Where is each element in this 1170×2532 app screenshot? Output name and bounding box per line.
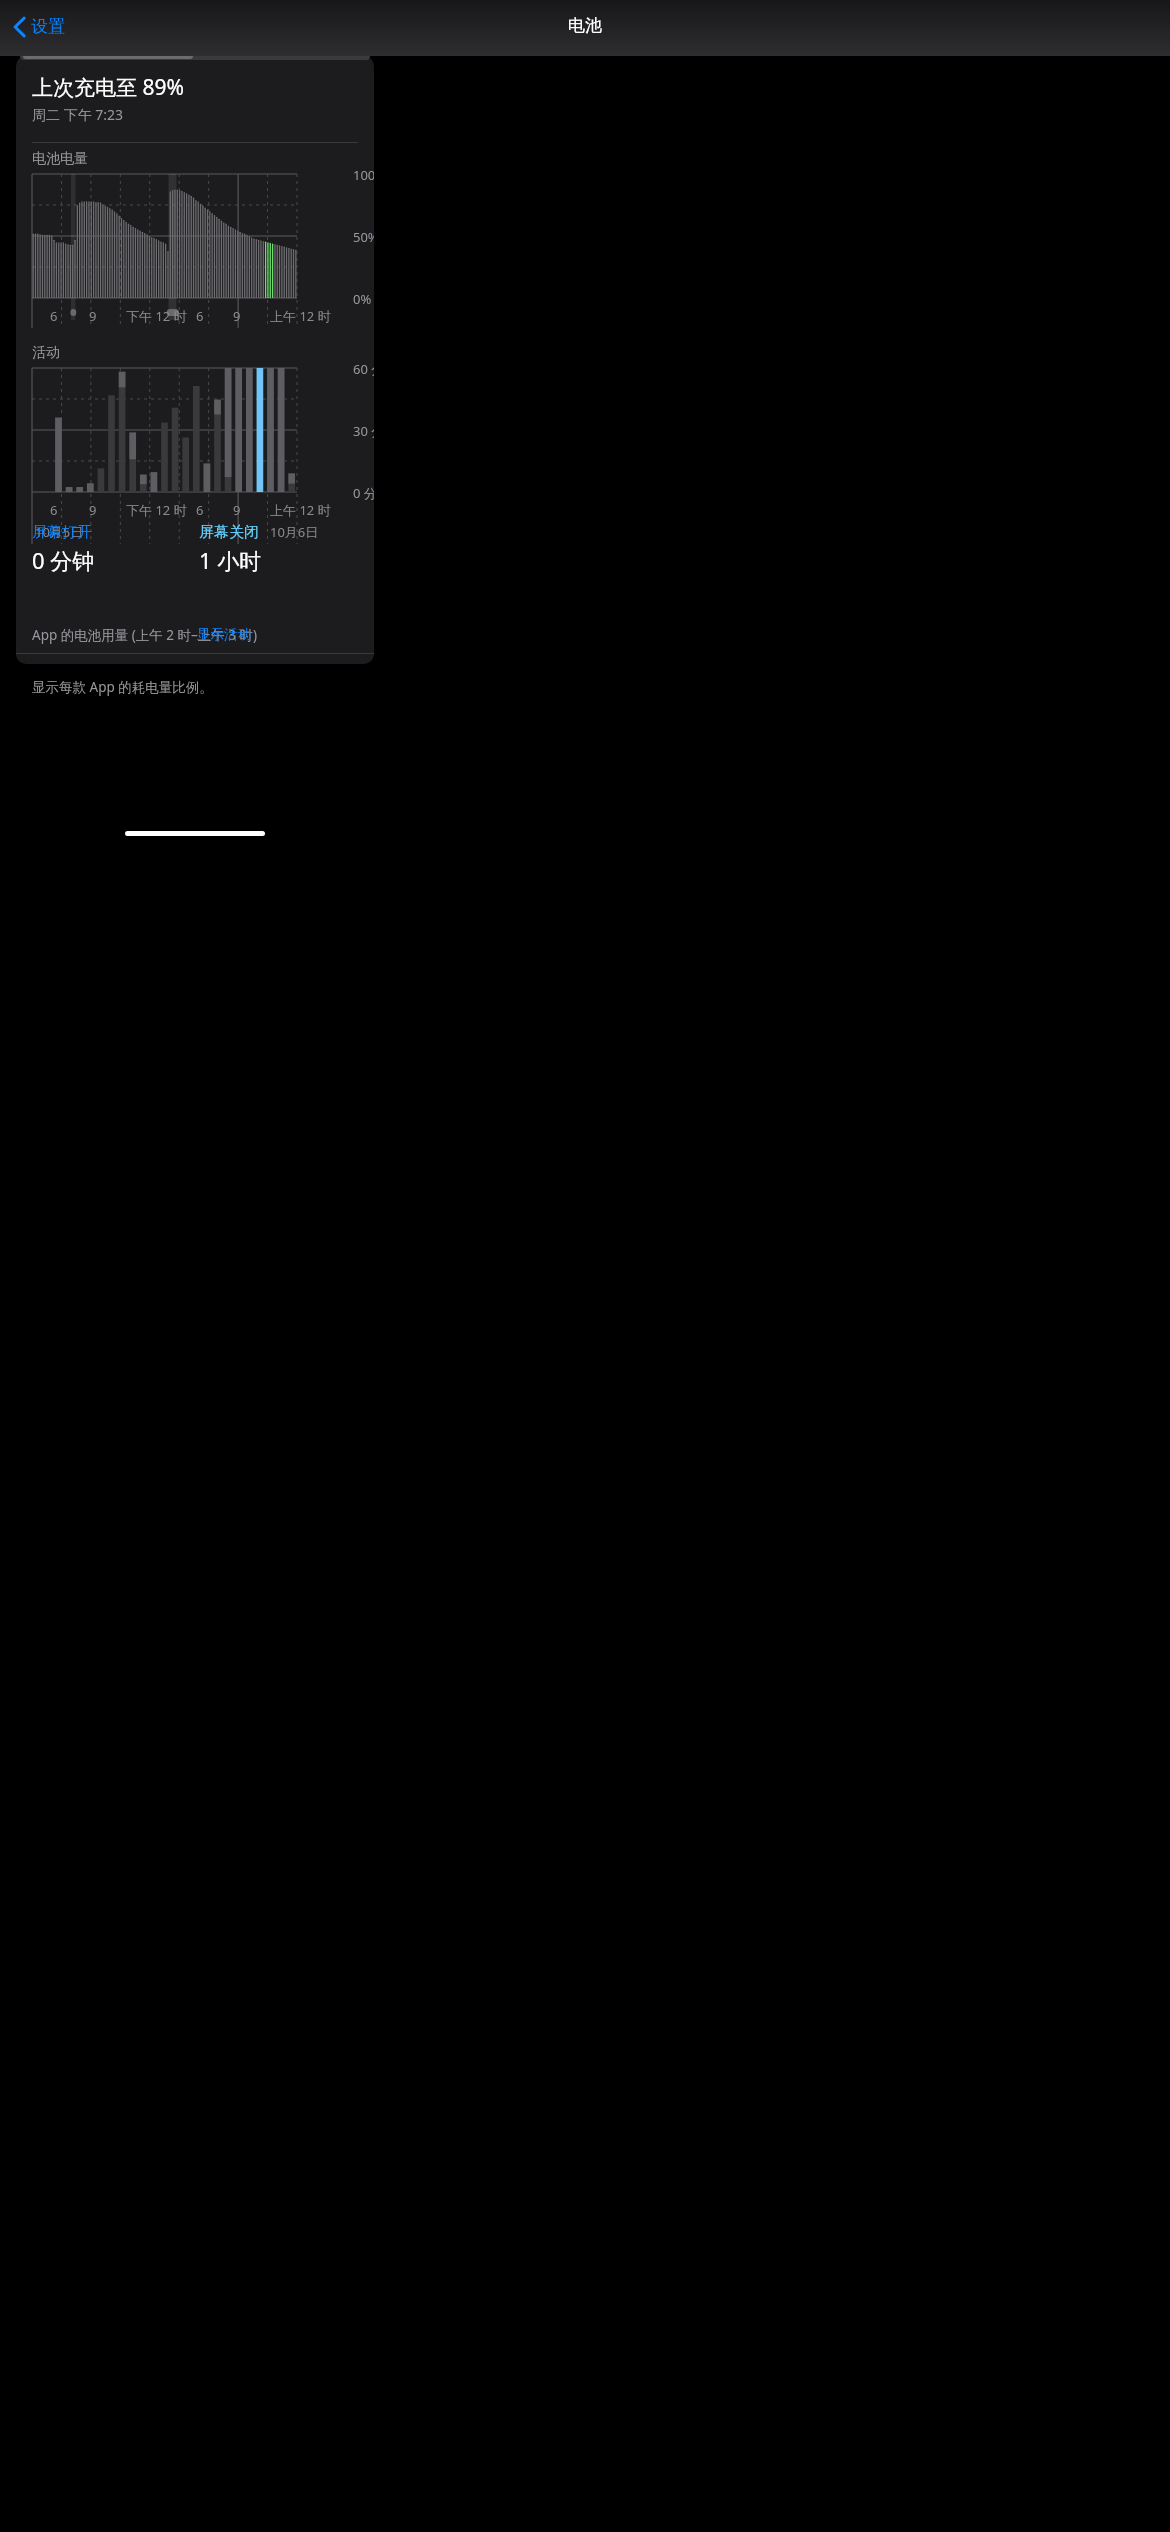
button[interactable]: 显示活动: [191, 622, 257, 647]
staticText: 9: [89, 307, 97, 325]
button[interactable]: 快手: [16, 654, 374, 664]
staticText: 屏幕关闭: [199, 523, 259, 542]
staticText: 30 分钟: [353, 422, 374, 440]
staticText: 50%: [353, 228, 374, 246]
staticText: 活动: [32, 344, 60, 362]
staticText: 电池: [568, 15, 602, 36]
staticText: 6: [196, 501, 204, 519]
staticText: 显示每款 App 的耗电量比例。: [32, 678, 213, 696]
staticText: 10月5日: [35, 523, 84, 541]
staticText: 0 分钟: [353, 484, 374, 502]
staticText: 设置: [31, 16, 65, 37]
staticText: 1 小时: [199, 545, 262, 575]
staticText: 屏幕打开: [32, 523, 92, 542]
staticText: 显示活动: [197, 626, 251, 643]
staticText: 10月6日: [270, 523, 319, 541]
staticText: 100%: [353, 166, 374, 184]
staticText: 0 分钟: [32, 545, 95, 575]
staticText: 电池电量: [32, 150, 88, 168]
staticText: 6: [50, 307, 58, 325]
staticText: 0%: [353, 290, 372, 308]
staticText: 上次充电至 89%: [32, 73, 184, 102]
staticText: 9: [233, 307, 241, 325]
staticText: 下午 12 时: [126, 501, 187, 519]
staticText: 9: [89, 501, 97, 519]
staticText: 周二 下午 7:23: [32, 105, 124, 124]
staticText: App 的电池用量 (上午 2 时–上午 3 时): [32, 626, 258, 644]
staticText: 5:27: [42, 11, 76, 34]
staticText: 6: [50, 501, 58, 519]
staticText: 下午 12 时: [126, 307, 187, 325]
staticText: 6: [196, 307, 204, 325]
staticText: 9: [233, 501, 241, 519]
button[interactable]: 设置: [8, 13, 71, 40]
staticText: 上午 12 时: [270, 307, 331, 325]
staticText: 上午 12 时: [270, 501, 331, 519]
staticText: 60 分钟: [353, 360, 374, 378]
